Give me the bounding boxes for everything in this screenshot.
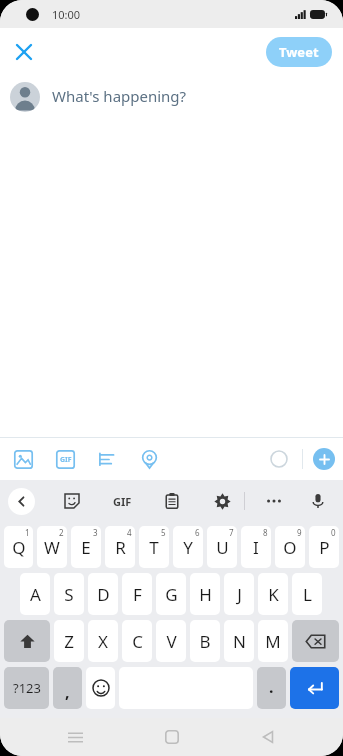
button[interactable]: More options bbox=[261, 488, 287, 514]
button[interactable]: Symbols bbox=[4, 667, 49, 709]
staticText: B bbox=[199, 630, 211, 653]
staticText: H bbox=[199, 583, 212, 606]
button[interactable]: Comma bbox=[53, 667, 82, 709]
button[interactable]: P bbox=[309, 526, 339, 568]
staticText: 10:00 bbox=[52, 7, 81, 22]
button[interactable]: B bbox=[190, 620, 220, 662]
button[interactable]: M bbox=[258, 620, 288, 662]
staticText: M bbox=[265, 630, 281, 653]
staticText: GIF bbox=[60, 455, 72, 465]
button[interactable]: Enter bbox=[290, 667, 339, 709]
button[interactable]: A bbox=[20, 573, 50, 615]
staticText: E bbox=[81, 536, 91, 559]
staticText: . bbox=[269, 676, 274, 698]
staticText: I bbox=[253, 536, 259, 559]
staticText: L bbox=[303, 583, 312, 606]
staticText: K bbox=[268, 583, 279, 606]
staticText: Q bbox=[12, 536, 26, 559]
button[interactable]: Tweet bbox=[266, 37, 332, 67]
button[interactable]: Recent apps bbox=[53, 718, 97, 756]
staticText: 2 bbox=[59, 527, 64, 538]
staticText: U bbox=[216, 536, 229, 559]
button[interactable]: Q bbox=[4, 526, 33, 568]
button[interactable]: T bbox=[139, 526, 169, 568]
button[interactable]: X bbox=[88, 620, 118, 662]
staticText: T bbox=[149, 536, 159, 559]
staticText: 1 bbox=[25, 527, 30, 538]
button[interactable]: S bbox=[54, 573, 84, 615]
button[interactable]: U bbox=[207, 526, 237, 568]
button[interactable]: Z bbox=[54, 620, 84, 662]
staticText: A bbox=[30, 583, 41, 606]
staticText: , bbox=[65, 681, 70, 703]
staticText: 7 bbox=[229, 527, 234, 538]
staticText: P bbox=[319, 536, 330, 559]
button[interactable]: Y bbox=[173, 526, 203, 568]
button[interactable]: D bbox=[88, 573, 118, 615]
button[interactable]: Back bbox=[246, 718, 290, 756]
staticText: 8 bbox=[263, 527, 268, 538]
button[interactable]: Close bbox=[6, 34, 42, 70]
staticText: D bbox=[97, 583, 110, 606]
button[interactable]: J bbox=[224, 573, 254, 615]
button[interactable]: Profile bbox=[10, 82, 40, 112]
staticText: N bbox=[233, 630, 246, 653]
button[interactable]: W bbox=[37, 526, 67, 568]
button[interactable]: Period bbox=[257, 667, 286, 709]
button[interactable]: Add poll bbox=[92, 444, 122, 474]
button[interactable]: H bbox=[190, 573, 220, 615]
staticText: Tweet bbox=[279, 43, 319, 61]
button[interactable]: Add location bbox=[134, 444, 164, 474]
button[interactable]: Add tweet bbox=[313, 448, 335, 470]
staticText: GIF bbox=[113, 494, 132, 509]
staticText: F bbox=[133, 583, 142, 606]
button[interactable]: Clipboard bbox=[159, 488, 185, 514]
button[interactable]: R bbox=[105, 526, 135, 568]
staticText: Y bbox=[183, 536, 193, 559]
staticText: J bbox=[237, 583, 242, 606]
button[interactable]: Emoji bbox=[86, 667, 115, 709]
button[interactable]: Add GIF bbox=[50, 444, 80, 474]
button[interactable]: N bbox=[224, 620, 254, 662]
button[interactable]: F bbox=[122, 573, 152, 615]
button[interactable]: V bbox=[156, 620, 186, 662]
staticText: O bbox=[283, 536, 297, 559]
button[interactable]: Shift bbox=[4, 620, 50, 662]
staticText: 9 bbox=[297, 527, 302, 538]
staticText: W bbox=[44, 536, 60, 559]
button[interactable]: GIF keyboard bbox=[109, 488, 135, 514]
button[interactable]: Voice input bbox=[305, 488, 331, 514]
staticText: 3 bbox=[93, 527, 98, 538]
staticText: X bbox=[98, 630, 108, 653]
staticText: 4 bbox=[127, 527, 132, 538]
staticText: 6 bbox=[195, 527, 200, 538]
staticText: ?123 bbox=[13, 679, 41, 697]
button[interactable]: C bbox=[122, 620, 152, 662]
button[interactable]: L bbox=[292, 573, 322, 615]
staticText: What's happening? bbox=[52, 86, 187, 106]
button[interactable]: I bbox=[241, 526, 271, 568]
staticText: 0 bbox=[331, 527, 336, 538]
button[interactable]: Back bbox=[8, 488, 35, 515]
staticText: Z bbox=[64, 630, 74, 653]
staticText: V bbox=[166, 630, 177, 653]
button[interactable]: K bbox=[258, 573, 288, 615]
staticText: 5 bbox=[161, 527, 166, 538]
button[interactable]: Backspace bbox=[292, 620, 339, 662]
staticText: G bbox=[165, 583, 178, 606]
button[interactable]: Home bbox=[150, 718, 194, 756]
button[interactable]: G bbox=[156, 573, 186, 615]
button[interactable]: O bbox=[275, 526, 305, 568]
staticText: C bbox=[132, 630, 143, 653]
staticText: R bbox=[115, 536, 126, 559]
button[interactable]: Add photo bbox=[8, 444, 38, 474]
button[interactable]: Stickers bbox=[59, 488, 85, 514]
button[interactable]: E bbox=[71, 526, 101, 568]
staticText: S bbox=[64, 583, 74, 606]
button[interactable]: Settings bbox=[209, 488, 235, 514]
